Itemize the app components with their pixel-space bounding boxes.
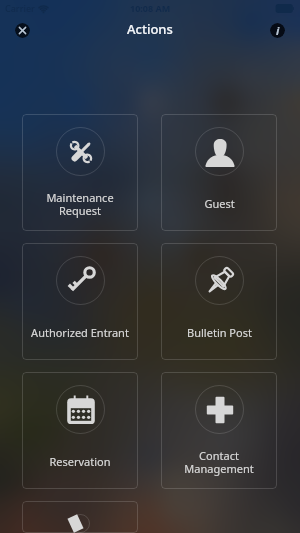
staticText: i [276,23,280,38]
button[interactable]: Guest [161,114,277,231]
staticText: Reservation [49,454,111,469]
button[interactable]: Contact Management [161,372,277,489]
staticText: 10:08 AM [130,2,171,14]
button[interactable]: Bulletin Post [161,243,277,360]
button[interactable]: Close [15,23,30,38]
button[interactable]: Information [270,23,285,38]
button[interactable]: Authorized Entrant [22,243,138,360]
staticText: Guest [204,196,235,211]
button[interactable]: Work Order [22,501,138,533]
staticText: Authorized Entrant [31,325,129,340]
staticText: Carrier [5,2,35,14]
staticText: Actions [127,20,173,38]
staticText: Maintenance Request [46,190,114,218]
button[interactable]: Maintenance Request [22,114,138,231]
staticText: Bulletin Post [187,325,252,340]
button[interactable]: Reservation [22,372,138,489]
staticText: Contact Management [184,448,254,476]
